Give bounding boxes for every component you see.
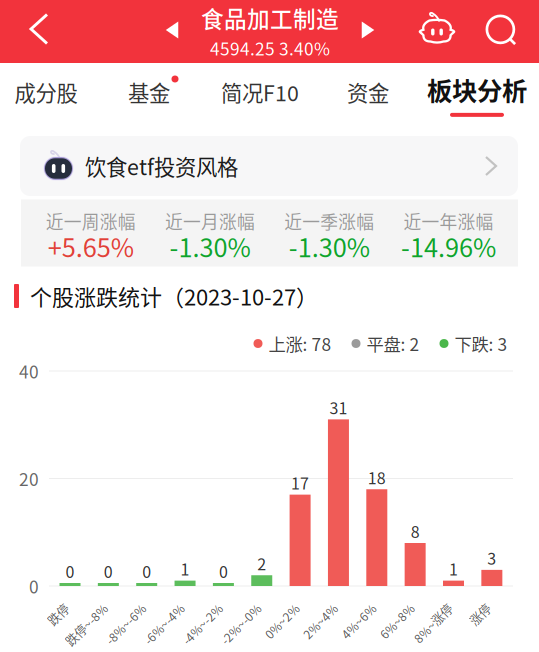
staticText: 涨停 [465, 597, 489, 615]
button[interactable]: 智能助手 [410, 3, 464, 59]
staticText: 18 [368, 466, 386, 489]
button[interactable]: 下一个 [348, 3, 388, 57]
staticText: 0 [142, 559, 151, 582]
staticText: -1.30% [289, 228, 370, 264]
staticText: -14.96% [401, 228, 496, 264]
staticText: 8%~涨停 [401, 597, 450, 615]
staticText: 成分股 [14, 77, 77, 107]
staticText: 40 [19, 358, 39, 384]
staticText: 基金 [128, 77, 170, 107]
staticText: 4594.25 3.40% [210, 35, 330, 60]
staticText: 个股涨跌统计（2023-10-27） [30, 280, 318, 312]
staticText: 上涨: 78 [268, 331, 331, 356]
staticText: 0 [219, 559, 228, 582]
staticText: 1 [181, 557, 190, 580]
staticText: 跌停 [43, 597, 67, 615]
staticText: +5.65% [48, 228, 134, 264]
button[interactable]: 饮食etf投资风格 [20, 136, 518, 196]
staticText: 1 [449, 557, 458, 580]
staticText: 20 [19, 466, 39, 491]
staticText: 板块分析 [427, 71, 527, 108]
button[interactable]: 资金 [339, 64, 397, 119]
button[interactable]: 上一个 [152, 3, 192, 57]
staticText: -8%~-6% [93, 597, 144, 615]
staticText: -2%~-0% [208, 597, 259, 615]
button[interactable]: 搜索 [472, 1, 530, 59]
staticText: 3 [487, 546, 496, 569]
staticText: 0 [65, 559, 74, 582]
staticText: 近一季涨幅 [284, 208, 374, 234]
button[interactable]: 板块分析 [419, 66, 535, 121]
staticText: 2 [257, 552, 266, 575]
staticText: 饮食etf投资风格 [85, 151, 238, 181]
button[interactable]: 返回 [8, 0, 70, 60]
button[interactable]: 成分股 [6, 64, 85, 119]
staticText: 2%~4% [292, 597, 335, 615]
staticText: -6%~-4% [131, 597, 182, 615]
staticText: 4%~6% [331, 597, 374, 615]
staticText: 0%~2% [254, 597, 297, 615]
staticText: 0 [104, 559, 113, 582]
staticText: 近一周涨幅 [46, 208, 136, 234]
staticText: 简况F10 [221, 77, 299, 107]
staticText: 近一月涨幅 [165, 208, 255, 234]
staticText: 下跌: 3 [454, 331, 507, 356]
staticText: 0 [29, 573, 39, 599]
staticText: -4%~-2% [169, 597, 220, 615]
button[interactable]: 基金 [120, 64, 178, 119]
staticText: 8 [411, 519, 420, 542]
staticText: 平盘: 2 [366, 331, 419, 356]
staticText: 近一年涨幅 [403, 208, 493, 234]
staticText: 跌停~-8% [52, 597, 105, 615]
staticText: 食品加工制造 [201, 1, 339, 34]
staticText: 31 [329, 396, 347, 419]
button[interactable]: 简况F10 [213, 64, 307, 119]
staticText: 17 [291, 471, 309, 494]
staticText: -1.30% [169, 228, 250, 264]
staticText: 6%~8% [369, 597, 412, 615]
staticText: 资金 [347, 77, 389, 107]
